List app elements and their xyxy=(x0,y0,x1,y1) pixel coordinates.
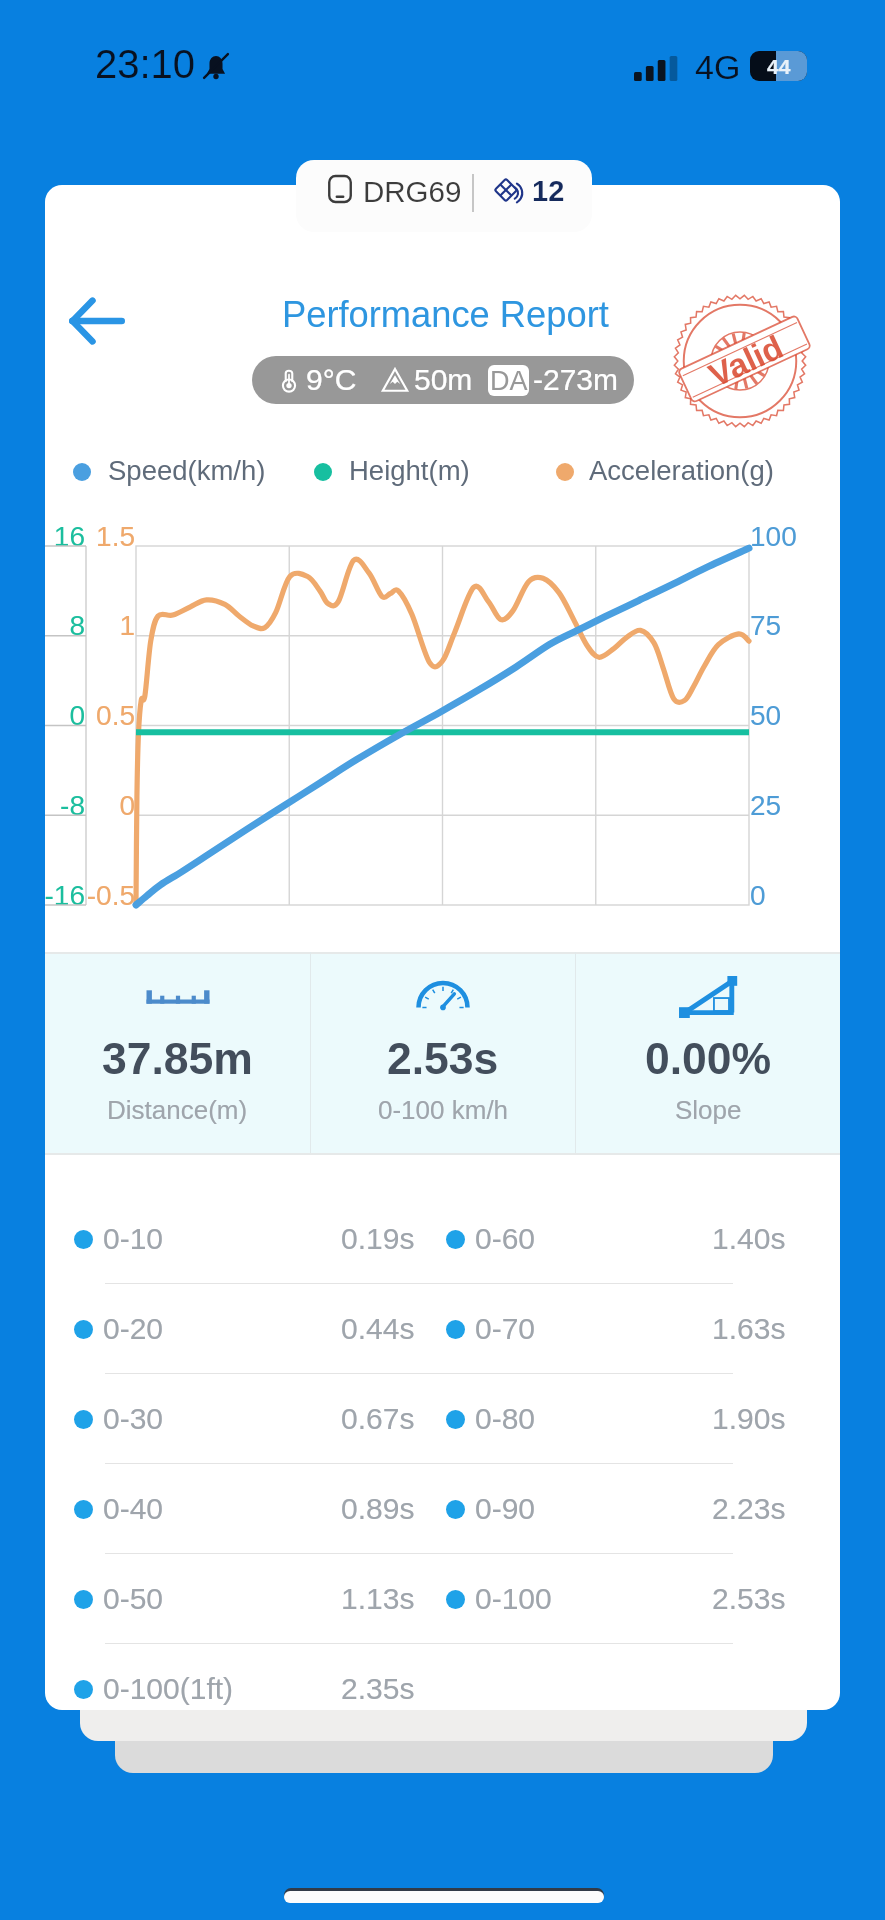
button[interactable]: 0-70 xyxy=(443,1284,825,1374)
staticText: 16 xyxy=(45,521,85,552)
staticText: DRG69 xyxy=(363,175,462,208)
staticText: 0-50 xyxy=(103,1582,164,1616)
staticText: 1.13s xyxy=(341,1582,415,1616)
staticText: 2.35s xyxy=(341,1672,415,1706)
button[interactable]: 0-40 xyxy=(60,1464,443,1554)
staticText: 0-100(1ft) xyxy=(103,1672,234,1706)
staticText: 1.5 xyxy=(45,521,135,552)
staticText: 0-90 xyxy=(475,1492,536,1526)
staticText: 44 xyxy=(767,55,791,78)
staticText: 1.90s xyxy=(712,1402,786,1436)
button[interactable]: 0-30 xyxy=(60,1374,443,1464)
staticText: 0-30 xyxy=(103,1402,164,1436)
button[interactable]: 37.85m xyxy=(45,952,310,1155)
button[interactable]: 0-100 xyxy=(443,1554,825,1644)
staticText: Speed(km/h) xyxy=(108,455,266,486)
staticText: Valid xyxy=(703,327,789,394)
staticText: 2.23s xyxy=(712,1492,786,1526)
staticText: 0.19s xyxy=(341,1222,415,1256)
button[interactable]: 0-100(1ft) xyxy=(60,1644,443,1710)
staticText: 0-60 xyxy=(475,1222,536,1256)
button[interactable]: 2.53s xyxy=(311,952,575,1155)
staticText: -8 xyxy=(45,790,85,821)
staticText: 1.63s xyxy=(712,1312,786,1346)
staticText: 8 xyxy=(45,610,85,641)
button[interactable]: 0.00% xyxy=(576,952,840,1155)
button[interactable]: DRG69 xyxy=(296,160,592,232)
button[interactable]: 0-20 xyxy=(60,1284,443,1374)
staticText: Acceleration(g) xyxy=(589,455,774,486)
staticText: 0 xyxy=(45,700,85,731)
button[interactable]: 0-50 xyxy=(60,1554,443,1644)
button[interactable]: 0-60 xyxy=(443,1194,825,1284)
staticText: Slope xyxy=(675,1095,742,1124)
staticText: 0-80 xyxy=(475,1402,536,1436)
button[interactable]: 0-10 xyxy=(60,1194,443,1284)
staticText: 9°C xyxy=(306,363,357,397)
staticText: 50 xyxy=(750,700,840,731)
staticText: -273m xyxy=(533,363,619,397)
staticText: 1 xyxy=(45,610,135,641)
staticText: 0-70 xyxy=(475,1312,536,1346)
staticText: 25 xyxy=(750,790,840,821)
staticText: 0 xyxy=(750,880,840,911)
button[interactable]: 0-90 xyxy=(443,1464,825,1554)
staticText: 0 xyxy=(45,790,135,821)
staticText: 0-100 xyxy=(475,1582,552,1616)
staticText: 75 xyxy=(750,610,840,641)
staticText: 1.40s xyxy=(712,1222,786,1256)
button[interactable]: Back xyxy=(56,280,138,362)
staticText: 0.5 xyxy=(45,700,135,731)
staticText: 0-20 xyxy=(103,1312,164,1346)
staticText: 2.53s xyxy=(712,1582,786,1616)
staticText: 50m xyxy=(414,363,473,397)
staticText: 12 xyxy=(532,175,565,207)
staticText: 0.89s xyxy=(341,1492,415,1526)
staticText: -0.5 xyxy=(45,880,135,911)
staticText: Height(m) xyxy=(349,455,470,486)
staticText: 0.67s xyxy=(341,1402,415,1436)
staticText: 2.53s xyxy=(387,1034,499,1084)
button[interactable]: 0-80 xyxy=(443,1374,825,1464)
staticText: 4G xyxy=(695,48,741,86)
staticText: Distance(m) xyxy=(107,1095,248,1124)
staticText: 23:10 xyxy=(95,42,196,87)
staticText: 37.85m xyxy=(102,1034,253,1084)
staticText: 0-100 km/h xyxy=(378,1095,509,1124)
staticText: 0-40 xyxy=(103,1492,164,1526)
staticText: 0.44s xyxy=(341,1312,415,1346)
staticText: 0-10 xyxy=(103,1222,164,1256)
staticText: -16 xyxy=(45,880,85,911)
staticText: 100 xyxy=(750,521,840,552)
staticText: DA xyxy=(490,366,528,396)
staticText: Performance Report xyxy=(282,294,609,335)
staticText: 0.00% xyxy=(645,1034,772,1084)
